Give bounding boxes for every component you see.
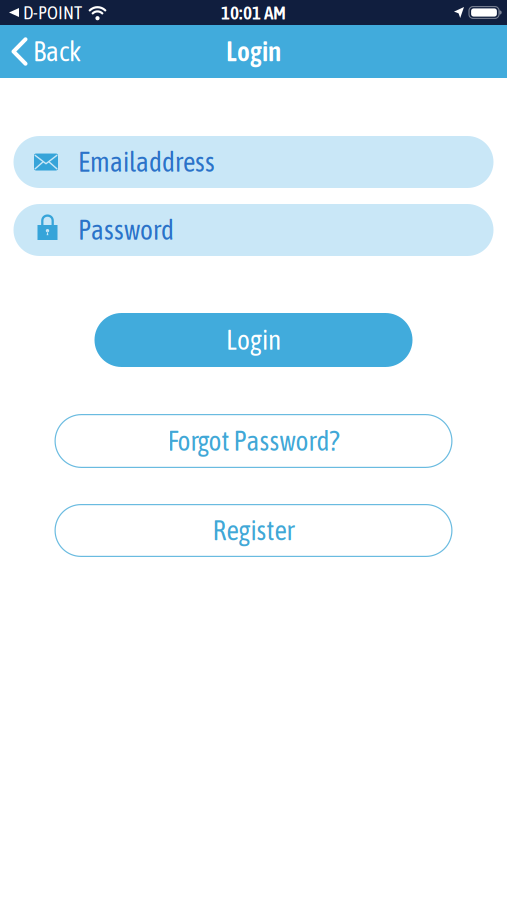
button[interactable]: Password [13, 204, 493, 256]
staticText: Back [33, 36, 81, 67]
staticText: Forgot Password? [167, 425, 339, 457]
staticText: Emailaddress [78, 146, 215, 178]
button[interactable]: Emailaddress [13, 136, 493, 188]
staticText: 10:01 AM [221, 1, 286, 24]
button[interactable]: Forgot Password? [54, 414, 452, 468]
staticText: Password [78, 214, 174, 246]
button[interactable]: Login [94, 313, 412, 367]
button[interactable]: Register [54, 504, 452, 557]
staticText: Login [226, 36, 281, 67]
staticText: Register [212, 515, 294, 546]
staticText: Login [226, 324, 281, 356]
staticText: D-POINT [23, 2, 82, 23]
button[interactable]: Back [0, 36, 81, 67]
